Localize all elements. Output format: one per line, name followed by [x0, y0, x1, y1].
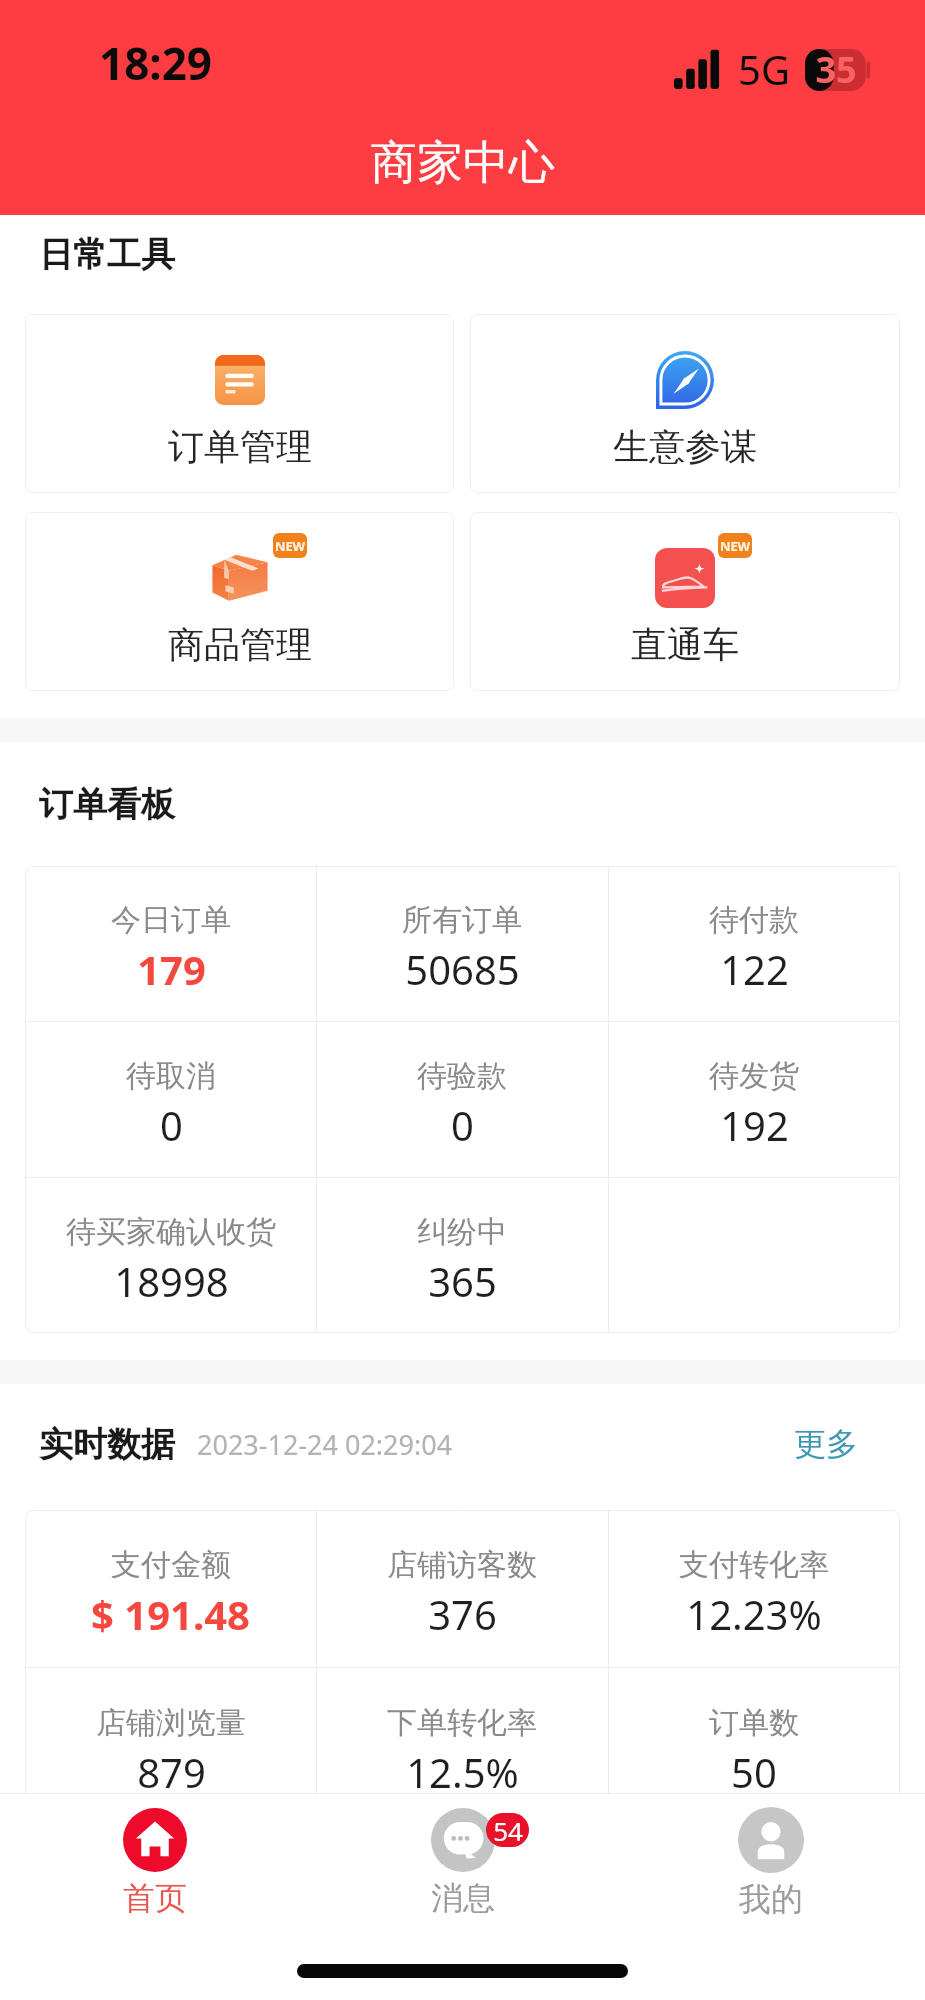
staticText: 待发货: [709, 1057, 799, 1095]
button[interactable]: 订单数: [608, 1668, 900, 1825]
button[interactable]: 生意参谋: [470, 314, 900, 493]
staticText: 订单数: [709, 1704, 799, 1742]
staticText: $ 191.48: [91, 1587, 250, 1641]
staticText: 商家中心: [371, 134, 555, 192]
staticText: 今日订单: [111, 901, 231, 939]
staticText: 消息: [431, 1878, 495, 1918]
staticText: 支付金额: [111, 1546, 231, 1584]
staticText: 0: [451, 1098, 474, 1152]
button[interactable]: 首页: [0, 1794, 309, 1932]
staticText: 直通车: [631, 622, 739, 667]
staticText: NEW: [720, 537, 750, 555]
button[interactable]: 消息: [309, 1794, 617, 1932]
button[interactable]: 店铺浏览量: [25, 1668, 316, 1825]
button[interactable]: 待买家确认收货: [25, 1178, 316, 1333]
button[interactable]: 店铺访客数: [316, 1510, 608, 1667]
staticText: 我的: [739, 1879, 803, 1919]
staticText: NEW: [275, 537, 305, 555]
staticText: 商品管理: [168, 622, 312, 667]
staticText: 支付转化率: [679, 1546, 829, 1584]
other: 消息: [431, 1808, 495, 1872]
button[interactable]: 支付转化率: [608, 1510, 900, 1667]
staticText: 18:29: [99, 33, 213, 93]
staticText: 生意参谋: [613, 424, 757, 469]
staticText: 12.23%: [686, 1587, 822, 1641]
staticText: 365: [428, 1254, 497, 1308]
button[interactable]: 我的: [617, 1794, 925, 1932]
staticText: 50: [731, 1745, 777, 1799]
staticText: 待验款: [417, 1057, 507, 1095]
button[interactable]: 今日订单: [25, 866, 316, 1021]
staticText: 订单管理: [168, 424, 312, 469]
button[interactable]: 待取消: [25, 1022, 316, 1177]
button[interactable]: 下单转化率: [316, 1668, 608, 1825]
button[interactable]: 待验款: [316, 1022, 608, 1177]
staticText: 订单看板: [39, 783, 175, 826]
staticText: 50685: [405, 942, 520, 996]
button[interactable]: 待付款: [608, 866, 900, 1021]
staticText: 0: [160, 1098, 183, 1152]
staticText: 日常工具: [39, 233, 175, 276]
staticText: 12.5%: [406, 1745, 519, 1799]
staticText: 下单转化率: [387, 1704, 537, 1742]
button[interactable]: NEW: [25, 512, 454, 691]
staticText: 35: [815, 45, 857, 94]
staticText: 18998: [114, 1254, 229, 1308]
staticText: 122: [720, 942, 789, 996]
staticText: 376: [428, 1587, 497, 1641]
button[interactable]: 所有订单: [316, 866, 608, 1021]
button[interactable]: 订单管理: [25, 314, 454, 493]
staticText: 实时数据: [39, 1423, 175, 1466]
staticText: 首页: [123, 1878, 187, 1918]
staticText: 所有订单: [402, 901, 522, 939]
staticText: 192: [720, 1098, 789, 1152]
button[interactable]: 纠纷中: [316, 1178, 608, 1333]
staticText: 待取消: [126, 1057, 216, 1095]
button[interactable]: 更多: [788, 1420, 864, 1468]
other: 我的: [738, 1807, 804, 1873]
staticText: 纠纷中: [417, 1213, 507, 1251]
staticText: 店铺浏览量: [96, 1704, 246, 1742]
button[interactable]: 待发货: [608, 1022, 900, 1177]
staticText: 5G: [738, 42, 790, 96]
staticText: 待买家确认收货: [66, 1213, 276, 1251]
other: 首页: [123, 1808, 187, 1872]
staticText: 更多: [794, 1424, 858, 1464]
staticText: 店铺访客数: [387, 1546, 537, 1584]
staticText: 879: [137, 1745, 206, 1799]
staticText: 179: [137, 942, 206, 996]
button[interactable]: NEW: [470, 512, 900, 691]
staticText: 54: [493, 1813, 523, 1847]
staticText: 待付款: [709, 901, 799, 939]
staticText: 2023-12-24 02:29:04: [197, 1426, 453, 1463]
button[interactable]: 支付金额: [25, 1510, 316, 1667]
